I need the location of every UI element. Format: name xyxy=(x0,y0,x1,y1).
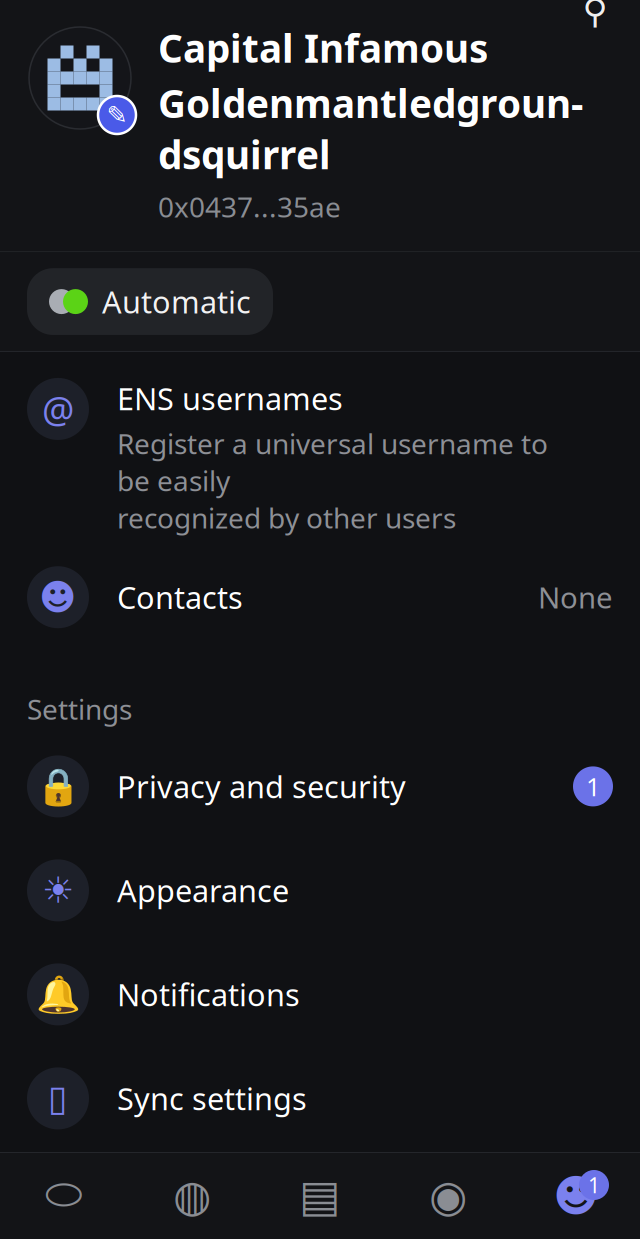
button[interactable]: Automatic xyxy=(27,268,273,335)
staticText: ◍ xyxy=(173,1171,211,1221)
staticText: ENS usernames xyxy=(117,378,343,419)
staticText: Register a universal username to be easi… xyxy=(117,425,548,536)
staticText: Sync settings xyxy=(117,1078,307,1119)
button[interactable]: Browser xyxy=(128,1153,256,1239)
button[interactable]: ☻ xyxy=(0,566,640,628)
staticText: ▯ xyxy=(48,1078,68,1119)
button[interactable]: Communities xyxy=(384,1153,512,1239)
staticText: 1 xyxy=(588,1171,600,1199)
staticText: Contacts xyxy=(117,577,243,618)
staticText: ▤ xyxy=(299,1171,341,1221)
staticText: Privacy and security xyxy=(117,766,406,807)
staticText: ☻ xyxy=(39,577,77,618)
button[interactable]: Profile xyxy=(512,1153,640,1239)
button[interactable]: ☀ xyxy=(0,859,640,921)
staticText: Appearance xyxy=(117,870,289,911)
staticText: ⚌ xyxy=(42,1182,74,1223)
button[interactable]: 🔒 xyxy=(0,755,640,817)
staticText: ☀ xyxy=(42,870,74,911)
button[interactable]: ▯ xyxy=(0,1067,640,1129)
staticText: Capital Infamous xyxy=(158,22,488,73)
button[interactable]: Edit profile picture xyxy=(24,22,136,134)
button[interactable]: Wallet xyxy=(256,1153,384,1239)
staticText: 1 xyxy=(586,770,600,803)
staticText: 🔒 xyxy=(35,766,80,807)
staticText: 🔔 xyxy=(35,974,80,1015)
button[interactable]: @ xyxy=(0,372,640,542)
staticText: Settings xyxy=(27,690,132,727)
staticText: 0x0437...35ae xyxy=(158,188,341,225)
staticText: ⚲ xyxy=(582,0,607,31)
staticText: @ xyxy=(42,385,74,433)
staticText: ☻ xyxy=(553,1171,599,1221)
staticText: ✎ xyxy=(106,101,127,129)
staticText: Goldenmantledgroundsquirrel xyxy=(158,77,583,180)
button[interactable]: ⚌ xyxy=(0,1171,640,1233)
staticText: ◉ xyxy=(429,1171,467,1221)
staticText: Notifications xyxy=(117,974,300,1015)
button[interactable]: 🔔 xyxy=(0,963,640,1025)
staticText: None xyxy=(538,578,613,617)
staticText: ⬭ xyxy=(45,1174,83,1217)
button[interactable]: Scan xyxy=(568,0,622,26)
button[interactable]: Chats xyxy=(0,1153,128,1239)
staticText: Advanced xyxy=(117,1182,259,1223)
staticText: Automatic xyxy=(102,281,251,322)
